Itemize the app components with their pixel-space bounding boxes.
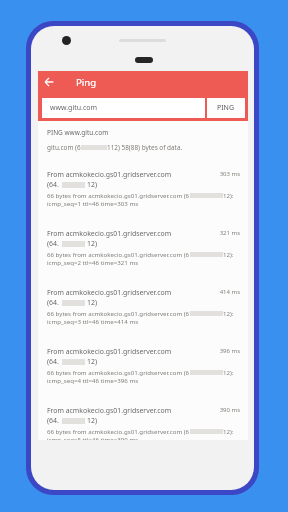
staticText: (64. <box>47 357 59 366</box>
staticText: 112) 58(88) bytes of data. <box>107 143 183 152</box>
staticText: From acmkokecio.gs01.gridserver.com <box>47 347 172 356</box>
staticText: (64. <box>47 239 59 248</box>
staticText: 12): <box>223 427 234 435</box>
staticText: icmp_seq=3 ttl=46 time=414 ms <box>47 317 139 325</box>
staticText: 12): <box>223 250 234 258</box>
staticText: PING www.gitu.com <box>47 128 109 137</box>
staticText: Ping <box>76 76 97 89</box>
staticText: 321 ms <box>219 229 240 237</box>
staticText: 66 bytes from acmkokecio.gs01.gridserver… <box>47 309 190 317</box>
staticText: From acmkokecio.gs01.gridserver.com <box>47 288 172 297</box>
staticText: 12): <box>223 309 234 317</box>
staticText: 303 ms <box>219 170 240 178</box>
staticText: icmp_seq=5 ttl=46 time=390 ms <box>47 435 139 440</box>
staticText: 396 ms <box>219 347 240 355</box>
button[interactable]: From acmkokecio.gs01.gridserver.com <box>47 229 248 288</box>
staticText: 12): <box>223 191 234 199</box>
staticText: PING <box>217 103 235 113</box>
staticText: 390 ms <box>219 406 240 414</box>
staticText: 12) <box>87 357 97 366</box>
staticText: 66 bytes from acmkokecio.gs01.gridserver… <box>47 368 190 376</box>
staticText: icmp_seq=1 ttl=46 time=303 ms <box>47 199 139 207</box>
staticText: (64. <box>47 416 59 425</box>
staticText: www.gitu.com <box>50 103 98 113</box>
staticText: 414 ms <box>219 288 240 296</box>
staticText: From acmkokecio.gs01.gridserver.com <box>47 170 172 179</box>
staticText: icmp_seq=4 ttl=46 time=396 ms <box>47 376 139 384</box>
staticText: icmp_seq=2 ttl=46 time=321 ms <box>47 258 139 266</box>
staticText: 12) <box>87 239 97 248</box>
staticText: 12) <box>87 180 97 189</box>
button[interactable]: From acmkokecio.gs01.gridserver.com <box>47 170 248 229</box>
staticText: 66 bytes from acmkokecio.gs01.gridserver… <box>47 427 190 435</box>
staticText: From acmkokecio.gs01.gridserver.com <box>47 406 172 415</box>
staticText: 12) <box>87 416 97 425</box>
staticText: 66 bytes from acmkokecio.gs01.gridserver… <box>47 250 190 258</box>
button[interactable]: From acmkokecio.gs01.gridserver.com <box>47 406 248 440</box>
button[interactable]: From acmkokecio.gs01.gridserver.com <box>47 288 248 347</box>
button[interactable]: Navigate back <box>40 73 58 91</box>
button[interactable]: From acmkokecio.gs01.gridserver.com <box>47 347 248 406</box>
staticText: 12) <box>87 298 97 307</box>
button[interactable]: www.gitu.com <box>42 98 205 118</box>
staticText: gitu.com (6 <box>47 143 81 152</box>
button[interactable]: PING <box>207 98 245 118</box>
staticText: (64. <box>47 298 59 307</box>
staticText: 66 bytes from acmkokecio.gs01.gridserver… <box>47 191 190 199</box>
staticText: From acmkokecio.gs01.gridserver.com <box>47 229 172 238</box>
staticText: (64. <box>47 180 59 189</box>
staticText: 12): <box>223 368 234 376</box>
